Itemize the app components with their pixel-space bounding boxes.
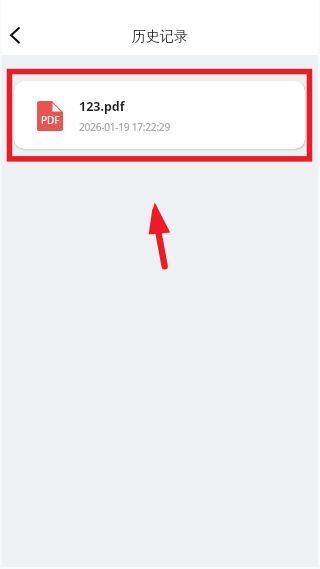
staticText: PDF [41, 113, 60, 127]
staticText: 历史记录 [0, 27, 320, 45]
button[interactable]: PDF [14, 81, 305, 149]
staticText: 2026-01-19 17:22:29 [79, 120, 170, 134]
staticText: 123.pdf [79, 98, 125, 115]
button[interactable]: Back [0, 17, 36, 53]
